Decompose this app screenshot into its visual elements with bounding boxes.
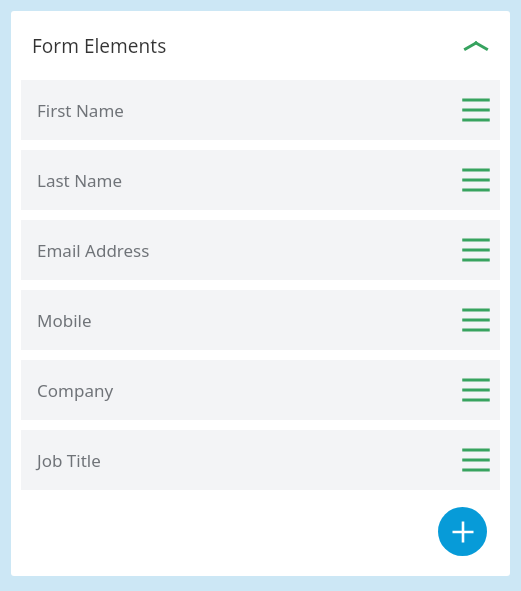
staticText: Email Address xyxy=(37,239,150,262)
staticText: Form Elements xyxy=(32,33,167,59)
staticText: First Name xyxy=(37,99,124,122)
button[interactable]: Add field xyxy=(438,507,487,556)
staticText: Job Title xyxy=(37,449,101,472)
staticText: Mobile xyxy=(37,309,92,332)
staticText: Company xyxy=(37,379,114,402)
button[interactable]: Reorder Email Address xyxy=(454,228,498,272)
button[interactable]: First Name xyxy=(21,80,500,140)
button[interactable]: Mobile xyxy=(21,290,500,350)
button[interactable]: Reorder Company xyxy=(454,368,498,412)
button[interactable]: Company xyxy=(21,360,500,420)
button[interactable]: Email Address xyxy=(21,220,500,280)
button[interactable]: Last Name xyxy=(21,150,500,210)
button[interactable]: Job Title xyxy=(21,430,500,490)
button[interactable]: Reorder First Name xyxy=(454,88,498,132)
button[interactable]: Reorder Mobile xyxy=(454,298,498,342)
button[interactable]: Form Elements xyxy=(11,11,510,80)
staticText: Last Name xyxy=(37,169,123,192)
button[interactable]: Reorder Last Name xyxy=(454,158,498,202)
button[interactable]: Reorder Job Title xyxy=(454,438,498,482)
button[interactable]: Collapse section xyxy=(454,24,498,68)
